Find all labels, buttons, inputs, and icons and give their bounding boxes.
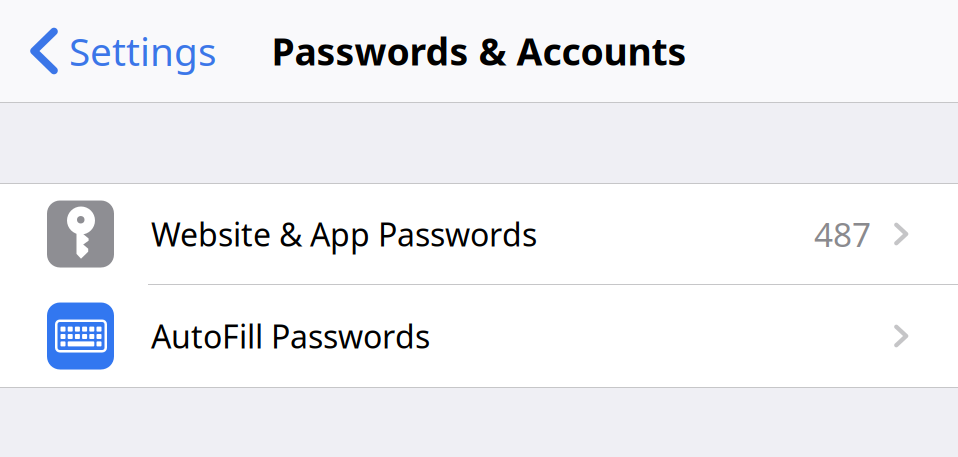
button[interactable]: AutoFill Passwords bbox=[0, 285, 958, 387]
button[interactable]: Back to Settings bbox=[0, 0, 225, 102]
staticText: Passwords & Accounts bbox=[271, 26, 686, 76]
staticText: Website & App Passwords bbox=[151, 213, 537, 255]
staticText: Settings bbox=[69, 25, 217, 77]
staticText: 487 bbox=[814, 212, 871, 256]
staticText: AutoFill Passwords bbox=[151, 315, 430, 357]
button[interactable]: Website & App Passwords, 487 bbox=[0, 184, 958, 284]
